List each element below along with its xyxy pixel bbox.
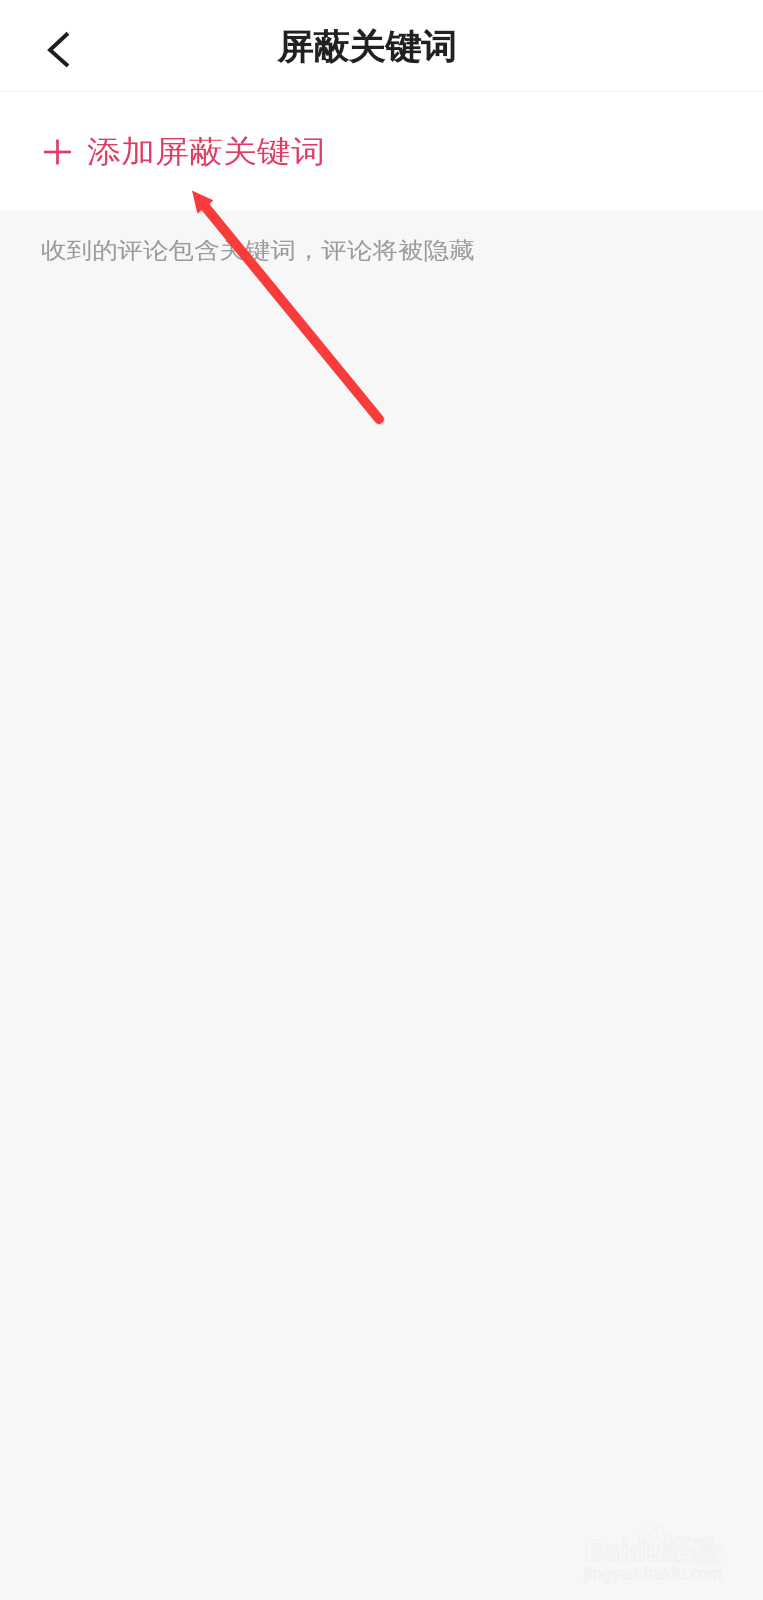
staticText: 收到的评论包含关键词，评论将被隐藏 [41, 236, 475, 264]
button[interactable]: 添加屏蔽关键词 [0, 92, 763, 211]
staticText: 添加屏蔽关键词 [87, 132, 325, 171]
staticText: 屏蔽关键词 [277, 25, 457, 68]
button[interactable]: Back [23, 14, 95, 86]
